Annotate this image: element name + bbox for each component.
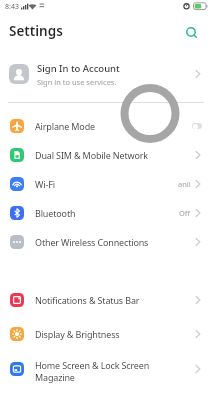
button[interactable]: Airplane Mode (10, 111, 202, 140)
button[interactable]: Home Screen & Lock Screen (10, 350, 202, 388)
button[interactable] (185, 26, 199, 40)
staticText: Sign In to Account (37, 62, 120, 75)
staticText: 8:43 (5, 2, 19, 12)
button[interactable]: Wi-Fi (10, 169, 202, 198)
staticText: Wi-Fi (35, 178, 178, 190)
staticText: Dual SIM & Mobile Network (35, 149, 194, 161)
button[interactable] (192, 123, 202, 129)
button[interactable]: Bluetooth (10, 198, 202, 227)
staticText: Display & Brightness (35, 328, 194, 340)
staticText: Magazine (35, 371, 75, 383)
staticText: Off (179, 208, 191, 218)
staticText: anil (178, 179, 191, 189)
staticText: Notifications & Status Bar (35, 294, 194, 306)
button[interactable]: Other Wireless Connections (10, 227, 202, 256)
staticText: Airplane Mode (35, 120, 192, 132)
staticText: Home Screen & Lock Screen (35, 359, 150, 371)
button[interactable]: Notifications & Status Bar (10, 284, 202, 315)
staticText: Sign in to use services. (37, 77, 117, 87)
button[interactable]: Sign In to Account (9, 54, 202, 94)
staticText: Bluetooth (35, 207, 179, 219)
staticText: Other Wireless Connections (35, 236, 194, 248)
button[interactable]: Display & Brightness (10, 318, 202, 349)
button[interactable]: Dual SIM & Mobile Network (10, 140, 202, 169)
staticText: Settings (9, 22, 63, 40)
